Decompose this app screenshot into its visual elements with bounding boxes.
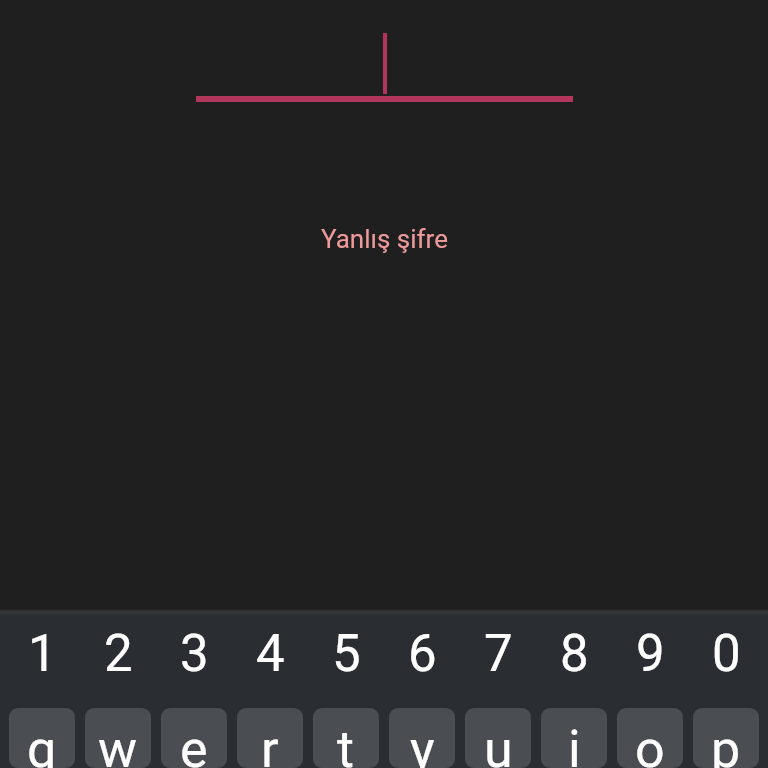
button[interactable]: 0 [688,615,764,708]
button[interactable]: 7 [460,615,536,708]
staticText: 9 [636,624,665,684]
staticText: e [180,719,208,768]
button[interactable]: w [85,708,151,768]
staticText: 6 [408,624,437,684]
staticText: 8 [560,624,589,684]
staticText: 3 [180,624,209,684]
button[interactable]: 3 [156,615,232,708]
button[interactable]: Şifre [196,0,573,102]
button[interactable]: e [161,708,227,768]
staticText: i [568,719,581,768]
staticText: Yanlış şifre [321,224,448,254]
staticText: 2 [104,624,133,684]
staticText: 1 [28,624,57,684]
staticText: w [98,719,138,768]
button[interactable]: y [389,708,455,768]
button[interactable]: 9 [612,615,688,708]
staticText: r [261,719,279,768]
button[interactable]: p [693,708,759,768]
staticText: q [27,719,57,768]
button[interactable]: 1 [4,615,80,708]
staticText: u [484,719,513,768]
staticText: 4 [256,624,285,684]
staticText: 0 [712,624,741,684]
staticText: p [711,719,741,768]
button[interactable]: r [237,708,303,768]
button[interactable]: 4 [232,615,308,708]
button[interactable]: 5 [308,615,384,708]
staticText: 7 [484,624,513,684]
staticText: o [635,719,665,768]
staticText: 5 [332,624,361,684]
button[interactable]: t [313,708,379,768]
button[interactable]: 6 [384,615,460,708]
button[interactable]: u [465,708,531,768]
staticText: y [410,719,435,768]
button[interactable]: 8 [536,615,612,708]
staticText: t [337,719,355,768]
button[interactable]: i [541,708,607,768]
button[interactable]: q [9,708,75,768]
button[interactable]: o [617,708,683,768]
button[interactable]: 2 [80,615,156,708]
